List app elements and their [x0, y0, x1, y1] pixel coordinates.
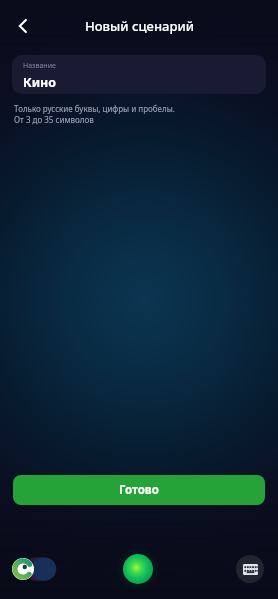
button[interactable]: Готово [13, 475, 265, 505]
button[interactable]: Home [121, 552, 155, 586]
button[interactable]: Back [6, 9, 40, 43]
staticText: Новый сценарий [85, 17, 194, 35]
staticText: От 3 до 35 символов [14, 114, 94, 125]
staticText: Название [23, 61, 56, 71]
button[interactable]: Keyboard [236, 555, 264, 583]
button[interactable]: Название [12, 55, 266, 94]
staticText: Готово [119, 482, 159, 498]
button[interactable]: Recent apps [10, 551, 62, 587]
staticText: Кино [23, 74, 57, 91]
staticText: Только русские буквы, цифры и пробелы. [14, 103, 175, 114]
